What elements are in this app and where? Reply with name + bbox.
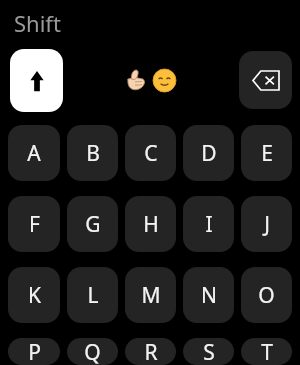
staticText: Shift — [14, 8, 61, 38]
button[interactable]: Smiling face emoji — [151, 67, 177, 93]
button[interactable]: Shift — [10, 49, 63, 112]
button[interactable]: A — [8, 125, 60, 181]
button[interactable]: M — [125, 267, 176, 323]
button[interactable]: E — [241, 125, 292, 181]
staticText: I — [205, 210, 213, 239]
staticText: F — [29, 210, 40, 239]
staticText: S — [203, 338, 215, 365]
button[interactable]: N — [183, 267, 234, 323]
staticText: B — [86, 139, 100, 168]
staticText: G — [85, 210, 101, 239]
staticText: J — [264, 210, 270, 239]
button[interactable]: B — [67, 125, 118, 181]
staticText: K — [28, 281, 41, 310]
staticText: H — [143, 210, 159, 239]
button[interactable]: Q — [67, 338, 118, 365]
staticText: P — [28, 338, 41, 365]
button[interactable]: S — [183, 338, 234, 365]
button[interactable]: H — [125, 196, 176, 252]
button[interactable]: O — [241, 267, 292, 323]
staticText: M — [141, 281, 161, 310]
button[interactable]: D — [183, 125, 234, 181]
button[interactable]: Thumbs up emoji — [123, 67, 149, 93]
button[interactable]: Backspace — [239, 51, 292, 109]
button[interactable]: R — [125, 338, 176, 365]
button[interactable]: C — [125, 125, 176, 181]
staticText: L — [87, 281, 99, 310]
staticText: R — [144, 338, 158, 365]
staticText: C — [144, 139, 158, 168]
staticText: E — [261, 139, 273, 168]
staticText: T — [261, 338, 273, 365]
staticText: N — [201, 281, 217, 310]
staticText: D — [201, 139, 217, 168]
button[interactable]: T — [241, 338, 292, 365]
button[interactable]: P — [8, 338, 60, 365]
button[interactable]: L — [67, 267, 118, 323]
staticText: Q — [84, 338, 101, 365]
button[interactable]: I — [183, 196, 234, 252]
button[interactable]: F — [8, 196, 60, 252]
button[interactable]: K — [8, 267, 60, 323]
button[interactable]: J — [241, 196, 292, 252]
staticText: A — [27, 139, 41, 168]
staticText: O — [258, 281, 275, 310]
button[interactable]: G — [67, 196, 118, 252]
